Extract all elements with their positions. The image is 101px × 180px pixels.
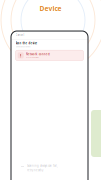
staticText: retry nearby	[27, 168, 43, 172]
staticText: Connect your device	[15, 46, 30, 48]
staticText: Scanning always can fail,	[27, 164, 58, 167]
staticText: Try reconnecting	[26, 56, 39, 58]
staticText: Device	[39, 4, 61, 13]
staticText: Scan the device	[15, 41, 37, 45]
staticText: Network connect	[26, 52, 50, 56]
button[interactable]: Cancel	[11, 31, 88, 39]
staticText: Cancel	[15, 33, 24, 37]
